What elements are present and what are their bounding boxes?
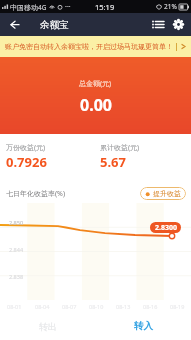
staticText: 提升收益 xyxy=(153,189,181,198)
button[interactable]: 转入 xyxy=(95,312,191,340)
staticText: 总金额(元) xyxy=(79,79,112,89)
button[interactable]: Back xyxy=(0,13,30,36)
staticText: 08-07 xyxy=(62,303,77,310)
staticText: 七日年化收益率(%) xyxy=(6,189,66,199)
staticText: 累计收益(元) xyxy=(100,143,140,153)
staticText: 2.850 xyxy=(9,219,24,226)
button[interactable]: Settings xyxy=(169,13,188,36)
staticText: 账户免密自动转入余额宝啦，开启过场马玩规更简单！ xyxy=(5,42,173,51)
staticText: 2.8300 xyxy=(155,223,177,233)
staticText: 21% xyxy=(164,2,177,11)
button[interactable]: 累计收益(元) xyxy=(100,134,191,177)
staticText: 万份收益(元) xyxy=(6,143,46,153)
staticText: 转出 xyxy=(39,321,57,332)
staticText: ··· xyxy=(65,2,71,12)
staticText: 余额宝 xyxy=(40,19,69,31)
staticText: 转入 xyxy=(134,320,153,332)
button[interactable]: 万份收益(元) xyxy=(6,134,95,177)
staticText: 08-10 xyxy=(89,303,104,310)
staticText: 2.838 xyxy=(9,273,24,280)
staticText: 08-04 xyxy=(35,303,50,310)
button[interactable]: Transaction records xyxy=(146,13,169,36)
staticText: 08-01 xyxy=(7,303,22,310)
button[interactable]: 提升收益 xyxy=(140,187,186,200)
staticText: 中国移动 xyxy=(10,3,38,12)
staticText: 15:19 xyxy=(95,2,115,12)
button[interactable]: 账户免密自动转入余额宝啦，开启过场马玩规更简单！ xyxy=(0,36,191,57)
staticText: 08-13 xyxy=(116,303,131,310)
staticText: 08-16 xyxy=(143,303,158,310)
staticText: 08-19 xyxy=(170,303,185,310)
staticText: 2.844 xyxy=(9,246,24,253)
staticText: 0.7926 xyxy=(6,153,47,171)
staticText: 4G xyxy=(38,3,47,12)
staticText: 5.67 xyxy=(100,153,126,171)
staticText: 0.00 xyxy=(80,94,112,116)
